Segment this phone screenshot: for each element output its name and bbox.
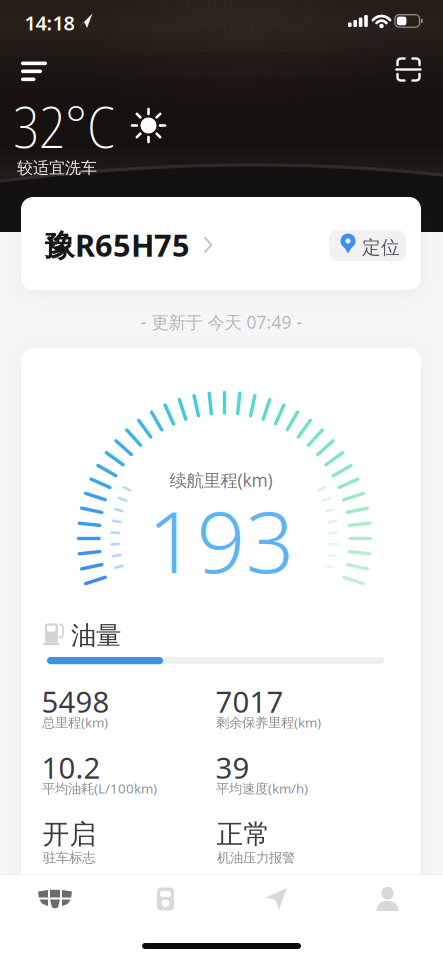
button[interactable]: 定位 [329,230,406,261]
staticText: 开启 [42,818,96,851]
staticText: 剩余保养里程(km) [216,713,321,731]
staticText: 5498 [41,682,109,721]
staticText: 定位 [362,236,400,259]
staticText: - 更新于 今天 07:49 - [140,310,302,333]
staticText: 平均油耗(L/100km) [42,779,157,797]
staticText: 10.2 [41,748,100,787]
staticText: 正常 [216,818,270,851]
staticText: 豫R65H75 [44,224,190,265]
staticText: 32°C [13,86,115,165]
button[interactable] [332,874,443,924]
staticText: 机油压力报警 [217,849,295,866]
staticText: 39 [215,748,249,787]
staticText: 较适宜洗车 [17,158,97,178]
staticText: 平均速度(km/h) [216,779,308,797]
staticText: 驻车标志 [43,849,95,866]
button[interactable]: 豫R65H75 [21,197,421,290]
button[interactable] [21,61,47,81]
button[interactable] [110,874,221,924]
staticText: 油量 [71,620,121,651]
staticText: 续航里程(km) [169,468,272,491]
button[interactable] [221,874,332,924]
staticText: 总里程(km) [42,713,108,731]
staticText: 7017 [215,682,283,721]
staticText: 193 [147,483,294,597]
button[interactable] [0,874,110,924]
button[interactable] [0,0,443,90]
staticText: 14:18 [24,9,74,36]
